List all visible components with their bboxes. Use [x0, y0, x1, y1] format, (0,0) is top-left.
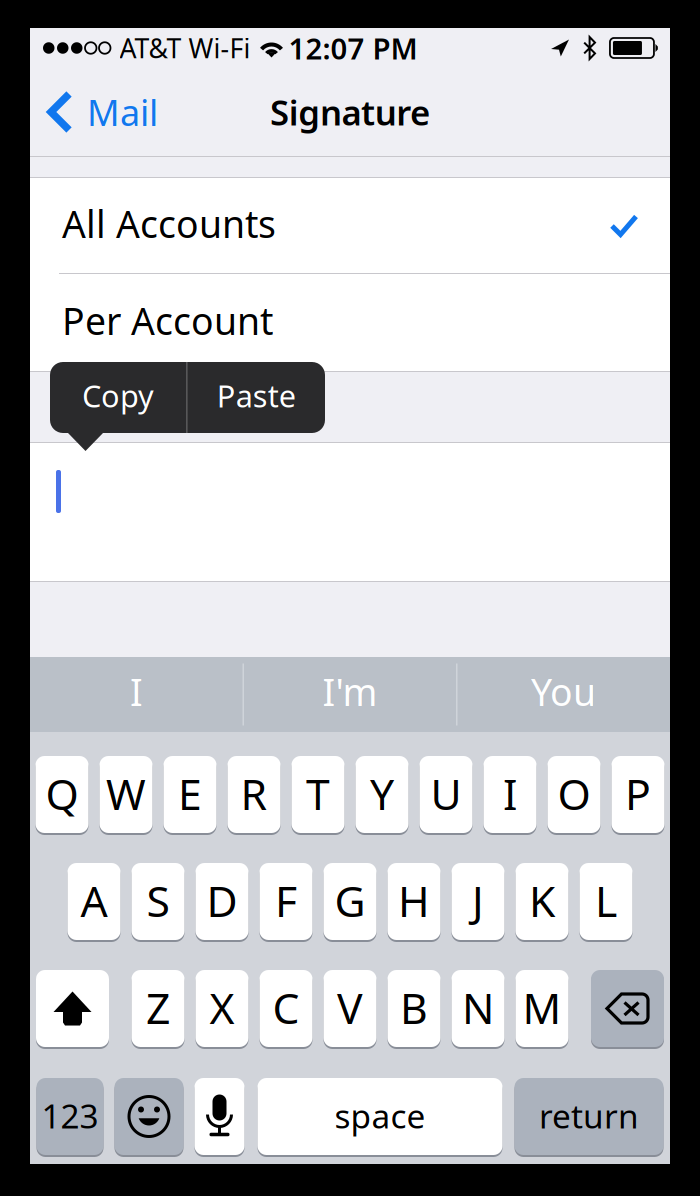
staticText: R: [240, 765, 267, 822]
button[interactable]: W: [99, 755, 152, 834]
button[interactable]: J: [451, 862, 504, 941]
staticText: P: [625, 765, 651, 822]
button[interactable]: E: [163, 755, 216, 834]
button[interactable]: Q: [35, 755, 88, 834]
button[interactable]: Per Account: [30, 274, 670, 371]
staticText: W: [106, 765, 146, 822]
button[interactable]: I: [483, 755, 536, 834]
button[interactable]: N: [451, 969, 504, 1048]
staticText: G: [334, 872, 365, 929]
staticText: I: [503, 765, 517, 822]
staticText: Signature: [270, 89, 430, 135]
staticText: All Accounts: [62, 199, 276, 248]
staticText: S: [146, 872, 169, 929]
staticText: return: [539, 1093, 639, 1138]
staticText: A: [80, 872, 107, 929]
button[interactable]: Delete: [591, 969, 664, 1048]
staticText: L: [595, 872, 617, 929]
staticText: T: [306, 765, 330, 822]
button[interactable]: R: [227, 755, 280, 834]
button[interactable]: Mail: [30, 68, 170, 156]
staticText: N: [462, 979, 494, 1036]
button[interactable]: T: [291, 755, 344, 834]
staticText: I'm: [322, 667, 377, 716]
button[interactable]: M: [515, 969, 568, 1048]
staticText: Mail: [87, 88, 158, 136]
button[interactable]: A: [67, 862, 120, 941]
button[interactable]: H: [387, 862, 440, 941]
staticText: B: [400, 979, 428, 1036]
staticText: Per Account: [62, 296, 273, 345]
button[interactable]: Dictate: [194, 1077, 244, 1156]
button[interactable]: Z: [131, 969, 184, 1048]
button[interactable]: C: [259, 969, 312, 1048]
staticText: H: [398, 872, 430, 929]
button[interactable]: L: [579, 862, 632, 941]
staticText: I: [130, 667, 143, 716]
staticText: You: [531, 667, 596, 716]
button[interactable]: V: [323, 969, 376, 1048]
staticText: U: [430, 765, 461, 822]
staticText: space: [334, 1093, 425, 1138]
button[interactable]: S: [131, 862, 184, 941]
staticText: E: [178, 765, 202, 822]
staticText: K: [529, 872, 555, 929]
staticText: Q: [45, 765, 78, 822]
staticText: X: [209, 979, 234, 1036]
staticText: J: [472, 872, 484, 929]
button[interactable]: I: [30, 657, 242, 732]
button[interactable]: 123: [36, 1077, 103, 1156]
button[interactable]: F: [259, 862, 312, 941]
staticText: 123: [41, 1093, 98, 1138]
button[interactable]: I'm: [244, 657, 456, 732]
button[interactable]: D: [195, 862, 248, 941]
button[interactable]: B: [387, 969, 440, 1048]
button[interactable]: G: [323, 862, 376, 941]
staticText: F: [275, 872, 297, 929]
button[interactable]: Paste: [188, 362, 325, 433]
button[interactable]: return: [514, 1077, 663, 1156]
staticText: O: [557, 765, 590, 822]
button[interactable]: P: [611, 755, 664, 834]
staticText: 12:07 PM: [288, 28, 417, 67]
button[interactable]: You: [457, 657, 669, 732]
button[interactable]: X: [195, 969, 248, 1048]
staticText: M: [522, 979, 561, 1036]
button[interactable]: Y: [355, 755, 408, 834]
button[interactable]: All Accounts: [30, 178, 670, 273]
button[interactable]: Copy: [50, 362, 186, 433]
staticText: Copy: [82, 375, 154, 416]
button[interactable]: Emoji: [114, 1077, 183, 1156]
button[interactable]: O: [547, 755, 600, 834]
staticText: Z: [146, 979, 170, 1036]
staticText: V: [337, 979, 363, 1036]
button[interactable]: space: [257, 1077, 502, 1156]
button[interactable]: U: [419, 755, 472, 834]
staticText: D: [206, 872, 237, 929]
button[interactable]: K: [515, 862, 568, 941]
staticText: Y: [370, 765, 394, 822]
staticText: C: [272, 979, 299, 1036]
staticText: AT&T Wi-Fi: [119, 30, 250, 66]
button[interactable]: Shift: [36, 969, 109, 1048]
staticText: Paste: [217, 375, 296, 416]
